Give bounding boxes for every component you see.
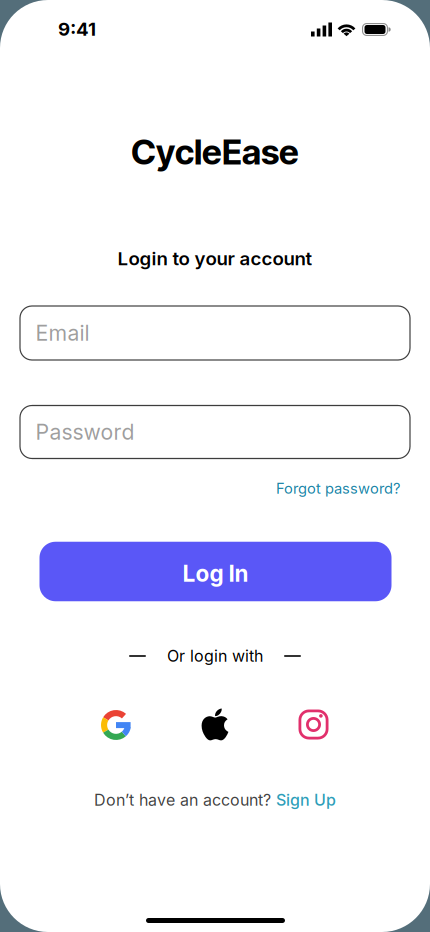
staticText: Login to your account (117, 247, 312, 269)
staticText: Log In (182, 560, 248, 587)
staticText: Or login with (167, 647, 263, 665)
button[interactable] (96, 705, 136, 745)
staticText: Email (35, 320, 89, 346)
staticText: Forgot password? (276, 480, 400, 497)
button[interactable]: Password (20, 405, 410, 458)
staticText: 9:41 (58, 18, 96, 40)
button[interactable]: Sign Up (276, 791, 336, 809)
button[interactable] (296, 707, 330, 741)
button[interactable]: Log In (39, 542, 391, 601)
button[interactable]: Email (20, 306, 410, 360)
staticText: Don’t have an account? (94, 791, 271, 809)
staticText: Password (35, 419, 134, 445)
button[interactable]: Forgot password? (276, 480, 400, 497)
button[interactable] (195, 702, 235, 746)
staticText: Sign Up (276, 791, 336, 809)
staticText: CycleEase (131, 131, 299, 173)
